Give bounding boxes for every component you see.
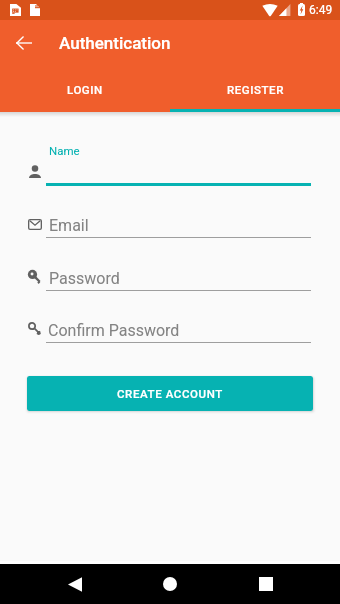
button[interactable]: Email [24,212,312,240]
button[interactable]: Confirm Password [24,317,312,345]
staticText: LOGIN [67,83,103,96]
staticText: CREATE ACCOUNT [117,387,223,400]
button[interactable]: CREATE ACCOUNT [27,376,313,411]
staticText: Name [49,144,80,157]
button[interactable]: Back [4,23,44,63]
button[interactable]: Recents [245,564,286,604]
button[interactable]: Password [24,264,312,292]
staticText: Authentication [59,33,171,53]
button[interactable]: Home [149,564,191,604]
staticText: 6:49 [309,3,333,17]
staticText: Password [49,269,120,288]
staticText: Confirm Password [48,321,180,340]
button[interactable]: REGISTER [170,67,340,112]
staticText: Email [49,216,89,235]
button[interactable]: LOGIN [0,67,170,112]
staticText: REGISTER [227,83,284,96]
button[interactable]: Back [53,564,96,604]
button[interactable]: Name [24,160,312,188]
